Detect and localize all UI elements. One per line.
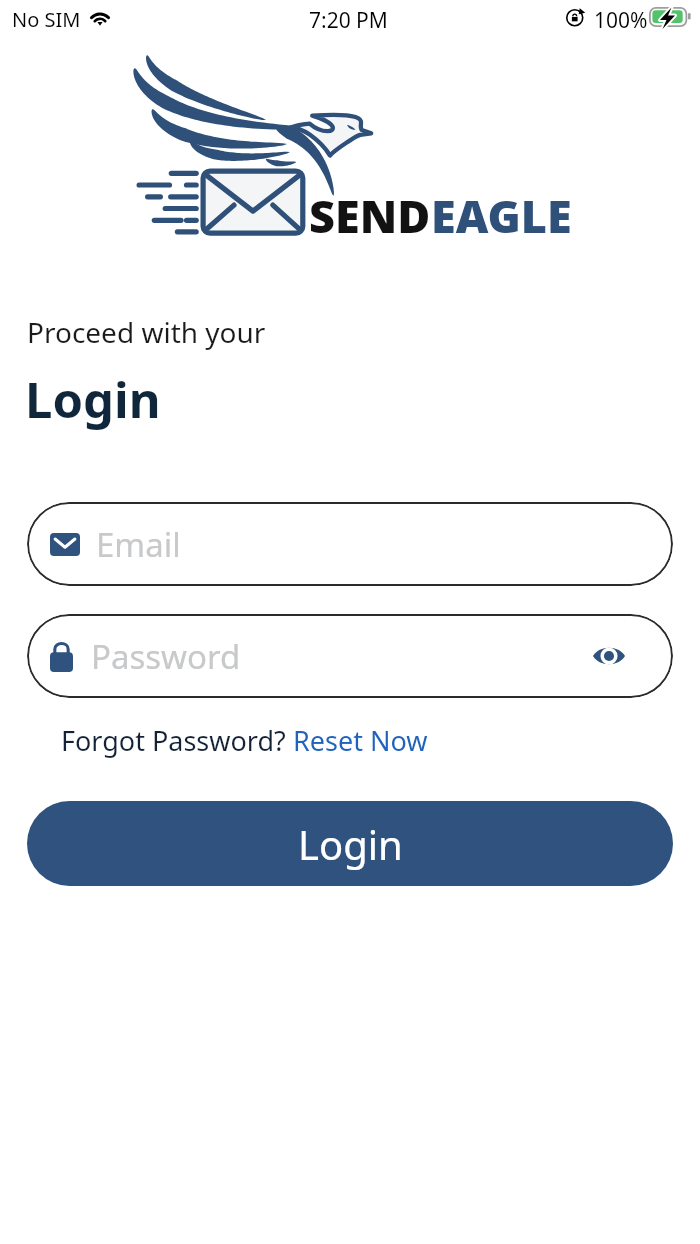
staticText: Password xyxy=(91,634,241,679)
button[interactable]: Show password xyxy=(586,633,632,679)
staticText: No SIM xyxy=(12,6,81,33)
staticText: 100% xyxy=(594,6,648,35)
staticText: Proceed with your xyxy=(27,313,266,351)
staticText: 7:20 PM xyxy=(309,6,388,35)
staticText: Forgot Password? xyxy=(61,722,293,759)
button[interactable]: Reset Now xyxy=(293,722,428,759)
staticText: Reset Now xyxy=(293,722,428,759)
staticText: Email xyxy=(96,522,181,567)
staticText: Login xyxy=(25,366,161,433)
staticText: SEND xyxy=(309,185,431,246)
button[interactable]: Email xyxy=(27,502,673,586)
button[interactable]: Login xyxy=(27,801,673,886)
staticText: EAGLE xyxy=(431,185,572,246)
button[interactable]: Password xyxy=(27,614,673,698)
staticText: Login xyxy=(298,817,403,871)
